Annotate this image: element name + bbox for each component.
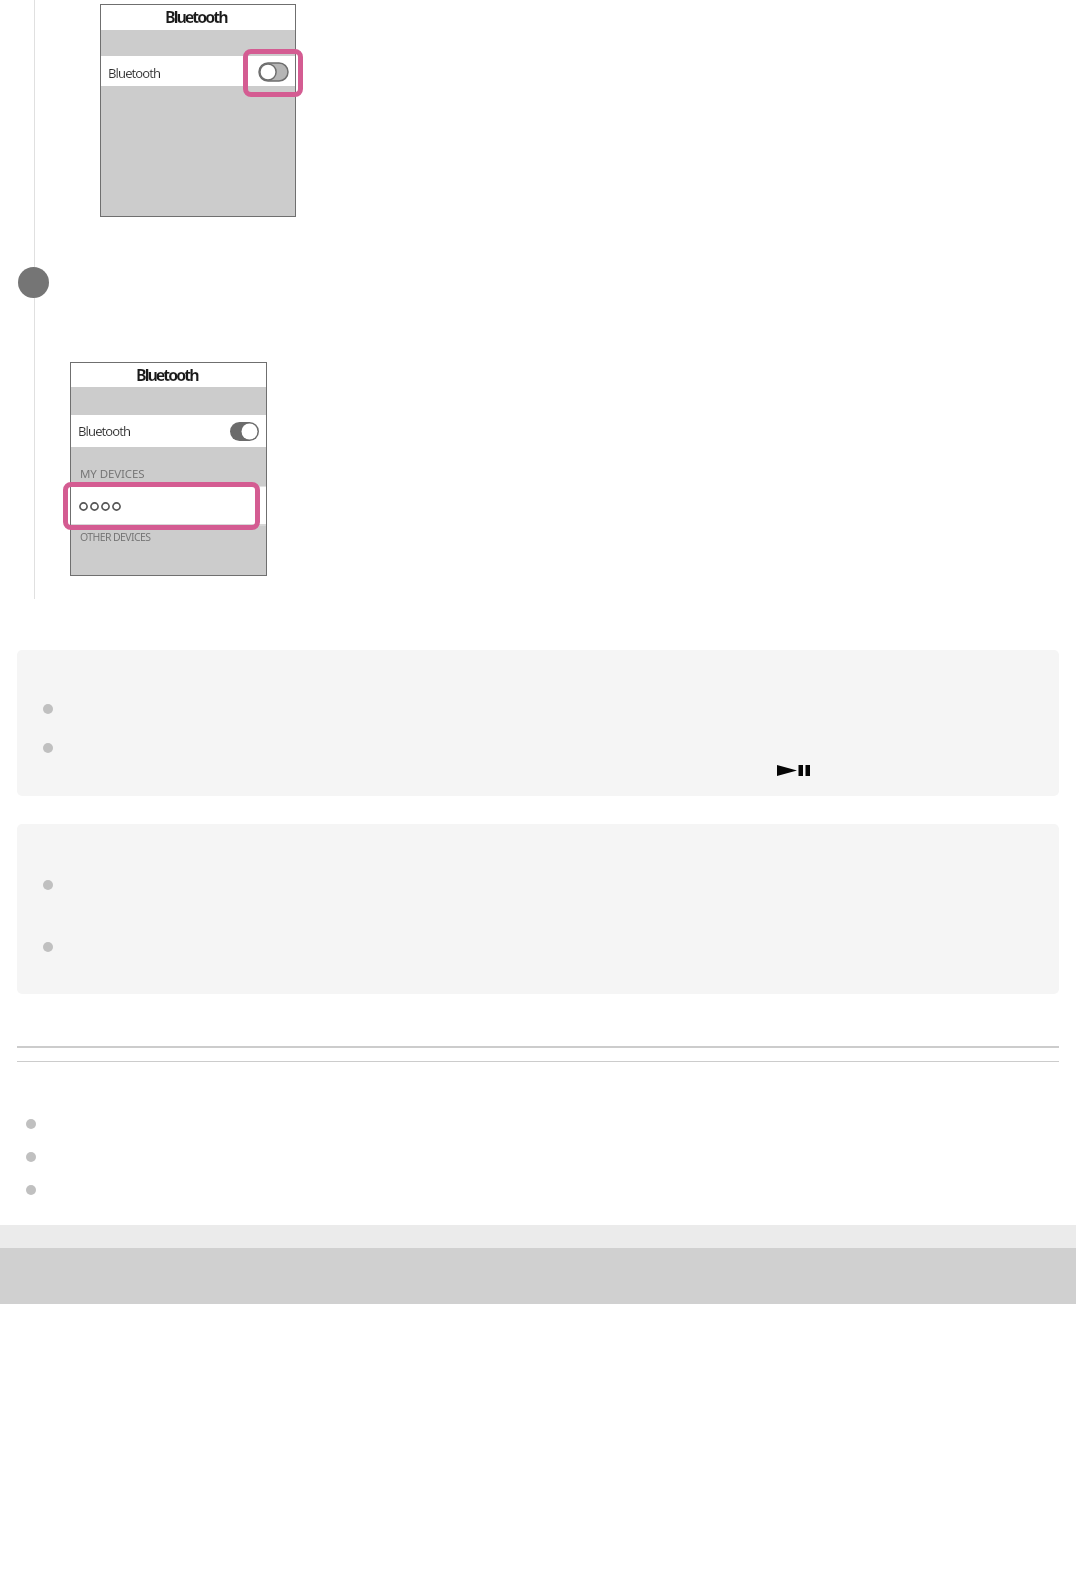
staticText: OTHER DEVICES xyxy=(80,530,151,544)
button[interactable]: Bluetooth xyxy=(70,415,267,447)
staticText: Bluetooth xyxy=(136,364,198,386)
staticText: Bluetooth xyxy=(78,422,131,440)
staticText: Bluetooth xyxy=(108,64,161,82)
other: Play / pause xyxy=(777,765,810,776)
button[interactable]: Paired headphones xyxy=(70,486,267,526)
staticText: Bluetooth xyxy=(165,6,227,28)
staticText: MY DEVICES xyxy=(80,466,145,482)
button[interactable]: Bluetooth switch, off xyxy=(259,63,288,81)
button[interactable]: Bluetooth xyxy=(100,56,296,86)
other: Bluetooth switch, on xyxy=(230,422,259,441)
